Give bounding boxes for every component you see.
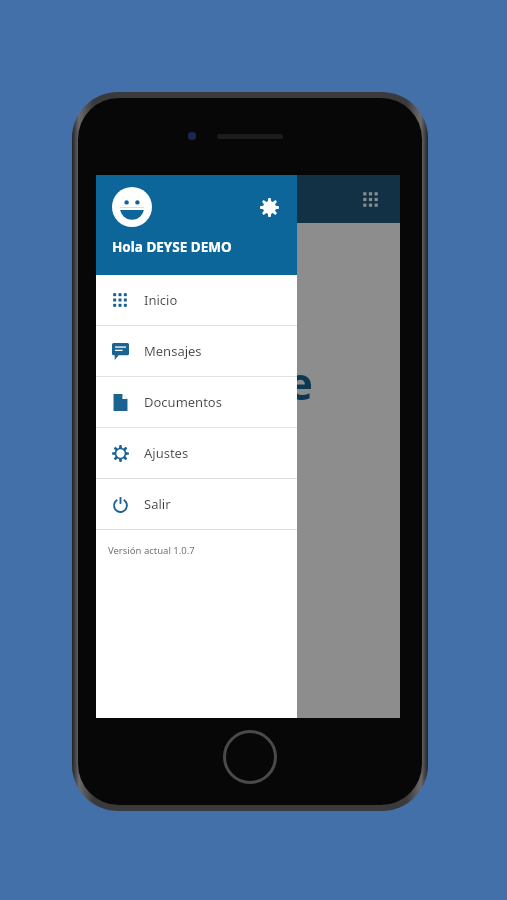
staticText: Hola DEYSE DEMO xyxy=(112,238,232,256)
staticText: Ajustes xyxy=(144,444,189,462)
button[interactable]: Ajustes xyxy=(96,428,297,478)
staticText: Documentos xyxy=(144,393,222,411)
button[interactable]: Settings xyxy=(251,189,287,225)
staticText: Deyse xyxy=(182,353,314,413)
staticText: Salir xyxy=(144,495,171,513)
button[interactable]: Mensajes xyxy=(96,326,297,376)
staticText: Mensajes xyxy=(144,342,202,360)
button[interactable]: Apps grid xyxy=(350,179,390,219)
staticText: Inicio xyxy=(144,291,178,309)
button[interactable]: Documentos xyxy=(96,644,400,718)
button[interactable]: Salir xyxy=(96,479,297,529)
button[interactable]: Inicio xyxy=(96,275,297,325)
button[interactable]: Settings xyxy=(96,175,297,275)
button[interactable]: Documentos xyxy=(96,377,297,427)
staticText: Versión actual 1.0.7 xyxy=(108,544,195,557)
